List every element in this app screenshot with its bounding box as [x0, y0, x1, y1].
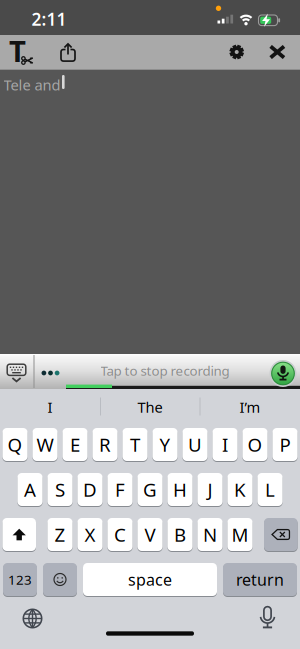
staticText: D — [83, 477, 97, 502]
staticText: T — [130, 432, 140, 457]
staticText: L — [265, 477, 275, 502]
staticText: X — [84, 522, 95, 547]
button[interactable]: Z — [47, 517, 73, 551]
button[interactable]: R — [92, 427, 118, 461]
button[interactable]: U — [182, 427, 208, 461]
button[interactable]: Shift — [2, 517, 36, 551]
button[interactable]: Emoji — [43, 562, 77, 596]
staticText: G — [143, 477, 157, 502]
button[interactable]: Y — [152, 427, 178, 461]
staticText: H — [173, 477, 187, 502]
button[interactable]: P — [272, 427, 298, 461]
button[interactable]: 123 — [3, 562, 37, 596]
staticText: 123 — [8, 571, 32, 588]
staticText: I — [47, 397, 52, 417]
staticText: Z — [54, 522, 65, 547]
button[interactable]: F — [107, 472, 133, 506]
button[interactable]: M — [227, 517, 253, 551]
staticText: space — [128, 569, 172, 590]
button[interactable]: I — [212, 427, 238, 461]
staticText: Y — [159, 432, 170, 457]
button[interactable]: Stop Recording — [269, 360, 296, 387]
staticText: V — [144, 522, 155, 547]
button[interactable]: E — [62, 427, 88, 461]
button[interactable]: Dismiss Keyboard — [0, 354, 33, 389]
staticText: S — [55, 477, 65, 502]
button[interactable]: W — [32, 427, 58, 461]
staticText: P — [279, 432, 290, 457]
button[interactable]: O — [242, 427, 268, 461]
staticText: 2:11 — [31, 7, 66, 30]
staticText: O — [247, 432, 262, 457]
button[interactable]: S — [47, 472, 73, 506]
button[interactable]: J — [197, 472, 223, 506]
button[interactable]: L — [257, 472, 283, 506]
button[interactable]: C — [107, 517, 133, 551]
button[interactable]: Q — [2, 427, 28, 461]
button[interactable]: Delete — [264, 517, 298, 551]
staticText: I’m — [239, 397, 260, 417]
staticText: K — [234, 477, 246, 502]
button[interactable]: Close — [264, 40, 290, 64]
button[interactable]: Trim — [9, 38, 37, 64]
button[interactable]: I’m — [202, 389, 298, 424]
button[interactable]: T — [122, 427, 148, 461]
staticText: B — [174, 522, 186, 547]
staticText: W — [36, 432, 53, 457]
staticText: The — [137, 397, 162, 417]
staticText: C — [114, 522, 126, 547]
button[interactable]: H — [167, 472, 193, 506]
staticText: M — [231, 522, 248, 547]
staticText: Q — [7, 432, 22, 457]
staticText: A — [24, 477, 36, 502]
staticText: E — [70, 432, 80, 457]
button[interactable]: Dictation — [259, 607, 275, 628]
button[interactable]: space — [83, 562, 217, 596]
button[interactable]: A — [17, 472, 43, 506]
staticText: F — [115, 477, 125, 502]
button[interactable]: More — [41, 371, 59, 375]
button[interactable]: Next Keyboard — [22, 608, 42, 628]
staticText: J — [207, 477, 212, 502]
staticText: T — [9, 31, 26, 70]
staticText: return — [236, 569, 284, 590]
button[interactable]: Share — [55, 40, 81, 64]
button[interactable]: Tap to stop recording — [100, 362, 229, 379]
button[interactable]: V — [137, 517, 163, 551]
button[interactable]: B — [167, 517, 193, 551]
staticText: N — [203, 522, 217, 547]
button[interactable]: D — [77, 472, 103, 506]
button[interactable]: return — [223, 562, 297, 596]
button[interactable]: The — [102, 389, 198, 424]
button[interactable]: X — [77, 517, 103, 551]
button[interactable]: N — [197, 517, 223, 551]
button[interactable]: I — [2, 389, 98, 424]
staticText: I — [222, 432, 228, 457]
staticText: U — [188, 432, 202, 457]
button[interactable]: Settings — [224, 40, 250, 64]
staticText: R — [99, 432, 111, 457]
staticText: Tele and — [3, 75, 60, 94]
button[interactable]: K — [227, 472, 253, 506]
staticText: Tap to stop recording — [100, 362, 229, 379]
button[interactable]: G — [137, 472, 163, 506]
